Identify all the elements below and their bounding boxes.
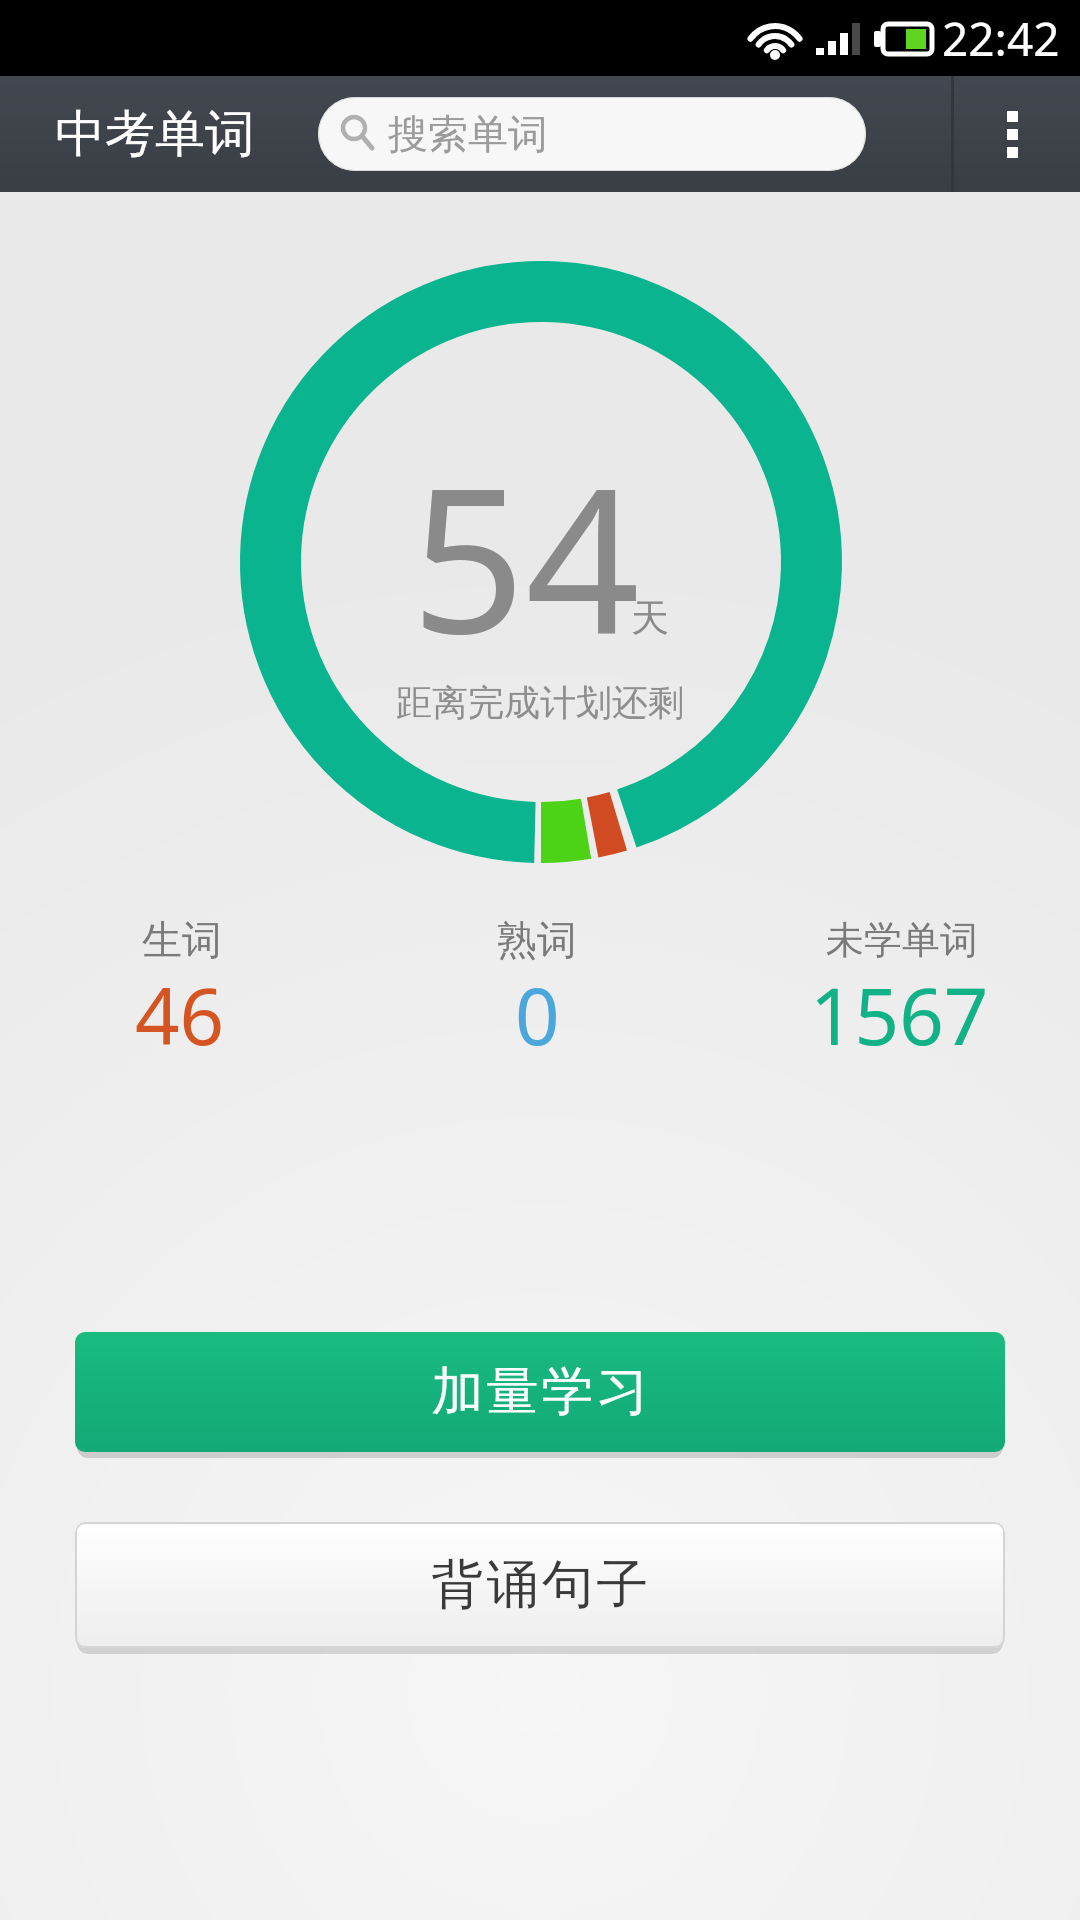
staticText: 天	[631, 594, 669, 642]
staticText: 加量学习	[430, 1359, 650, 1425]
staticText: 54	[411, 419, 640, 691]
button[interactable]: 加量学习	[75, 1332, 1005, 1452]
staticText: 背诵句子	[430, 1552, 650, 1618]
staticText: 搜索单词	[388, 109, 548, 159]
staticText: 22:42	[942, 7, 1060, 70]
staticText: 46	[135, 962, 225, 1068]
staticText: 熟词	[497, 915, 577, 965]
button[interactable]: 背诵句子	[75, 1522, 1005, 1648]
button[interactable]	[1007, 111, 1018, 158]
button[interactable]: 搜索单词	[318, 97, 866, 171]
staticText: 距离完成计划还剩	[396, 680, 684, 725]
staticText: 1567	[810, 962, 989, 1068]
staticText: 未学单词	[826, 916, 978, 964]
staticText: 生词	[142, 915, 222, 965]
staticText: 中考单词	[55, 103, 255, 166]
staticText: 0	[515, 962, 560, 1068]
